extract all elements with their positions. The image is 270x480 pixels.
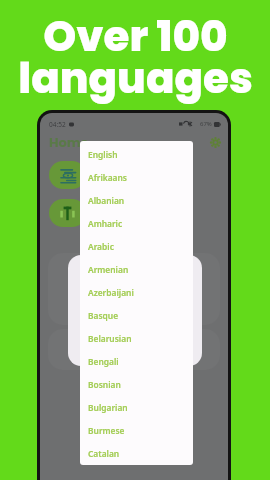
staticText: languages: [18, 49, 253, 108]
staticText: Albanian: [88, 195, 125, 206]
button[interactable]: Afrikaans: [80, 166, 193, 189]
staticText: Belarusian: [88, 333, 132, 344]
button[interactable]: Type text: [49, 199, 86, 227]
button[interactable]: Albanian: [80, 189, 193, 212]
staticText: Bulgarian: [88, 402, 128, 413]
staticText: Catalan: [88, 448, 120, 459]
button[interactable]: Amharic: [80, 212, 193, 235]
staticText: Azerbaijani: [88, 287, 134, 298]
staticText: English: [88, 149, 118, 160]
button[interactable]: Arabic: [80, 235, 193, 258]
staticText: Armenian: [88, 264, 129, 275]
staticText: Over 100: [43, 7, 228, 66]
staticText: 67%: [200, 120, 212, 128]
staticText: Burmese: [88, 425, 125, 436]
button[interactable]: Bengali: [80, 350, 193, 373]
staticText: Amharic: [88, 218, 123, 229]
button[interactable]: Armenian: [80, 258, 193, 281]
button[interactable]: Basque: [80, 304, 193, 327]
button[interactable]: Belarusian: [80, 327, 193, 350]
staticText: 04:52: [49, 120, 66, 129]
button[interactable]: Scan image: [49, 161, 86, 189]
button[interactable]: Bulgarian: [80, 396, 193, 419]
staticText: Home: [49, 133, 89, 151]
button[interactable]: Azerbaijani: [80, 281, 193, 304]
staticText: Bengali: [88, 356, 119, 367]
button[interactable]: English: [80, 143, 193, 166]
button[interactable]: Settings: [207, 134, 223, 150]
staticText: Arabic: [88, 241, 114, 252]
staticText: Basque: [88, 310, 119, 321]
button[interactable]: Burmese: [80, 419, 193, 442]
staticText: Bosnian: [88, 379, 121, 390]
staticText: Afrikaans: [88, 172, 128, 183]
button[interactable]: Catalan: [80, 442, 193, 465]
button[interactable]: Bosnian: [80, 373, 193, 396]
